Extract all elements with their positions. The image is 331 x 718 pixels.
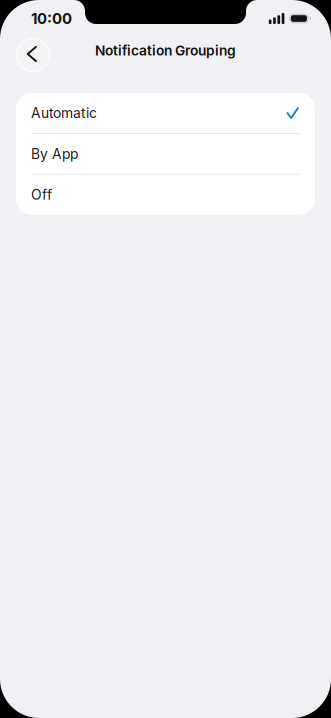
button[interactable]: Off xyxy=(16,175,315,215)
button[interactable]: By App xyxy=(16,134,315,174)
staticText: Notification Grouping xyxy=(95,42,236,59)
staticText: 10:00 xyxy=(31,9,72,28)
button[interactable]: Back xyxy=(16,38,50,72)
staticText: By App xyxy=(31,145,78,162)
staticText: Automatic xyxy=(31,105,97,121)
button[interactable]: Automatic xyxy=(16,93,315,133)
staticText: Off xyxy=(31,186,52,203)
